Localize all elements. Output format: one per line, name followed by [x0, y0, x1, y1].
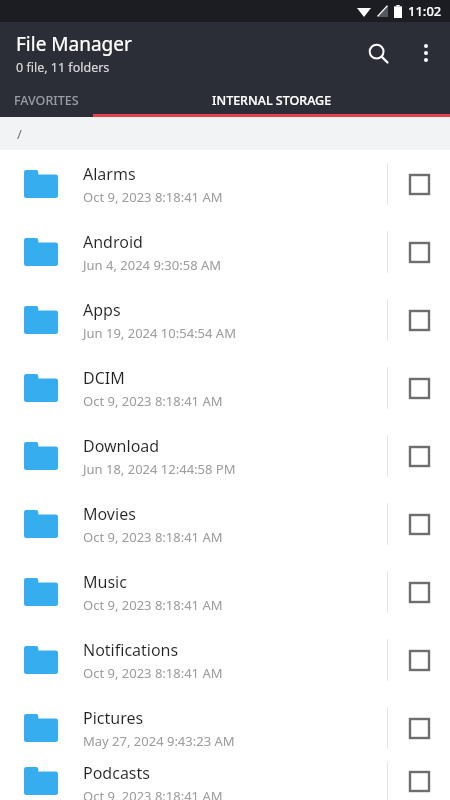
staticText: Podcasts: [83, 762, 150, 784]
staticText: Oct 9, 2023 8:18:41 AM: [83, 528, 223, 546]
staticText: Oct 9, 2023 8:18:41 AM: [83, 392, 223, 410]
staticText: May 27, 2024 9:43:23 AM: [83, 732, 235, 750]
staticText: Alarms: [83, 163, 136, 185]
staticText: Apps: [83, 299, 121, 321]
button[interactable]: Android: [0, 218, 450, 286]
staticText: Pictures: [83, 707, 144, 729]
staticText: /: [17, 125, 22, 143]
staticText: DCIM: [83, 367, 125, 389]
button[interactable]: Select Apps: [388, 286, 450, 354]
button[interactable]: More options: [402, 29, 450, 77]
staticText: 11:02: [408, 2, 442, 20]
button[interactable]: Apps: [0, 286, 450, 354]
staticText: Jun 19, 2024 10:54:54 AM: [83, 324, 236, 342]
button[interactable]: Search: [354, 29, 402, 77]
staticText: Oct 9, 2023 8:18:41 AM: [83, 664, 223, 682]
staticText: INTERNAL STORAGE: [212, 92, 332, 109]
staticText: Oct 9, 2023 8:18:41 AM: [83, 787, 223, 800]
staticText: FAVORITES: [14, 92, 79, 109]
button[interactable]: Select Movies: [388, 490, 450, 558]
button[interactable]: Select Pictures: [388, 694, 450, 762]
button[interactable]: Select Android: [388, 218, 450, 286]
staticText: Jun 4, 2024 9:30:58 AM: [83, 256, 222, 274]
staticText: Download: [83, 435, 160, 457]
staticText: Android: [83, 231, 143, 253]
staticText: File Manager: [16, 31, 132, 57]
staticText: Oct 9, 2023 8:18:41 AM: [83, 188, 223, 206]
button[interactable]: FAVORITES: [0, 84, 93, 117]
button[interactable]: Pictures: [0, 694, 450, 762]
button[interactable]: Download: [0, 422, 450, 490]
button[interactable]: Select Alarms: [388, 150, 450, 218]
button[interactable]: Select DCIM: [388, 354, 450, 422]
button[interactable]: Music: [0, 558, 450, 626]
button[interactable]: DCIM: [0, 354, 450, 422]
button[interactable]: Select Notifications: [388, 626, 450, 694]
button[interactable]: Movies: [0, 490, 450, 558]
button[interactable]: Select Download: [388, 422, 450, 490]
staticText: Oct 9, 2023 8:18:41 AM: [83, 596, 223, 614]
button[interactable]: INTERNAL STORAGE: [93, 84, 450, 117]
button[interactable]: Alarms: [0, 150, 450, 218]
staticText: Music: [83, 571, 127, 593]
staticText: Jun 18, 2024 12:44:58 PM: [83, 460, 236, 478]
staticText: Movies: [83, 503, 136, 525]
button[interactable]: Select Music: [388, 558, 450, 626]
staticText: Notifications: [83, 639, 179, 661]
button[interactable]: Podcasts: [0, 762, 450, 800]
button[interactable]: Notifications: [0, 626, 450, 694]
staticText: 0 file, 11 folders: [16, 59, 110, 76]
button[interactable]: Select Podcasts: [388, 762, 450, 800]
